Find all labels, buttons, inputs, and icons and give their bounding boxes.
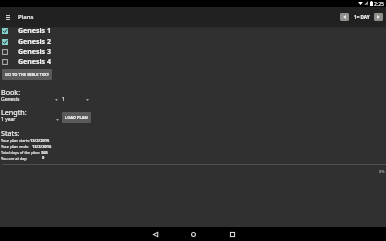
staticText: You are at day: <box>1 156 28 161</box>
button[interactable]: 1 year <box>1 116 60 123</box>
staticText: Stats: <box>1 128 20 138</box>
button[interactable]: Genesis 3 <box>0 47 386 57</box>
button[interactable]: Open navigation drawer <box>2 11 14 23</box>
button[interactable]: Genesis 1 <box>0 26 386 36</box>
staticText: 1 <box>62 96 65 103</box>
staticText: Total days of the plan: <box>1 150 41 155</box>
staticText: 1 year <box>1 116 16 123</box>
button[interactable]: Genesis 4 <box>0 57 386 67</box>
staticText: 13/2/2015 <box>30 138 50 143</box>
staticText: 13/2/2016 <box>32 144 52 149</box>
staticText: LOAD PLAN <box>65 115 88 120</box>
button[interactable]: Back <box>148 227 162 241</box>
button[interactable]: Home <box>186 227 200 241</box>
button[interactable]: Previous day <box>340 13 349 21</box>
staticText: Genesis 3 <box>18 47 51 57</box>
staticText: Plans <box>18 13 34 21</box>
staticText: 365 <box>41 150 48 155</box>
staticText: 0 <box>42 155 45 160</box>
staticText: 0% <box>379 169 385 174</box>
staticText: 2:25 <box>374 1 384 8</box>
button[interactable]: Genesis <box>1 96 59 103</box>
button[interactable]: Recent apps <box>225 227 239 241</box>
button[interactable]: Next day <box>374 13 383 21</box>
staticText: Genesis 4 <box>18 57 51 67</box>
staticText: GO TO THE BIBLE TEXT <box>5 72 50 77</box>
button[interactable]: Genesis 2 <box>0 37 386 47</box>
button[interactable]: LOAD PLAN <box>62 112 91 123</box>
button[interactable]: 1 <box>62 96 90 103</box>
staticText: Book: <box>1 87 21 97</box>
staticText: Length: <box>1 107 27 117</box>
staticText: 1ˢᵗ DAY <box>354 14 370 20</box>
staticText: Your plan starts: <box>1 138 31 143</box>
staticText: Genesis <box>1 96 20 103</box>
staticText: Genesis 2 <box>18 37 51 47</box>
staticText: Genesis 1 <box>18 26 51 36</box>
button[interactable]: GO TO THE BIBLE TEXT <box>2 69 52 80</box>
staticText: Your plan ends: <box>1 144 29 149</box>
